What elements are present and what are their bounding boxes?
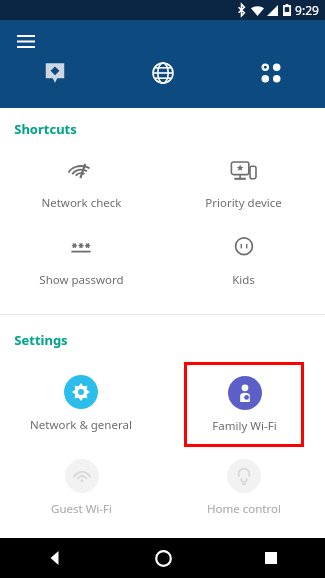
staticText: Show password (39, 272, 124, 288)
button[interactable]: Recent apps (217, 538, 325, 578)
button[interactable]: Priority device (162, 152, 325, 215)
button[interactable]: Family Wi-Fi (184, 362, 304, 447)
button[interactable]: Family Wi-Fi (208, 372, 281, 438)
button[interactable]: Shortcuts (217, 62, 325, 84)
button[interactable]: Network & general (26, 371, 136, 437)
staticText: Family Wi-Fi (212, 418, 277, 434)
button[interactable]: Network (109, 62, 217, 84)
button[interactable]: Home (109, 538, 217, 578)
button[interactable]: Guest Wi-Fi (47, 455, 116, 521)
staticText: Home control (207, 501, 281, 517)
staticText: Guest Wi-Fi (51, 501, 112, 517)
staticText: Kids (232, 272, 255, 288)
button[interactable]: Network check (0, 152, 162, 215)
button[interactable]: Devices (0, 62, 109, 84)
button[interactable]: Show password (0, 229, 162, 292)
staticText: Network check (41, 195, 122, 211)
staticText: 9:29 (295, 2, 319, 18)
staticText: Network & general (30, 417, 132, 433)
button[interactable]: Home control (203, 455, 285, 521)
staticText: Priority device (205, 195, 282, 211)
staticText: Settings (14, 331, 68, 349)
staticText: Shortcuts (14, 120, 77, 138)
button[interactable]: Menu (10, 25, 42, 57)
button[interactable]: Back (0, 538, 109, 578)
button[interactable]: Kids (162, 229, 325, 292)
